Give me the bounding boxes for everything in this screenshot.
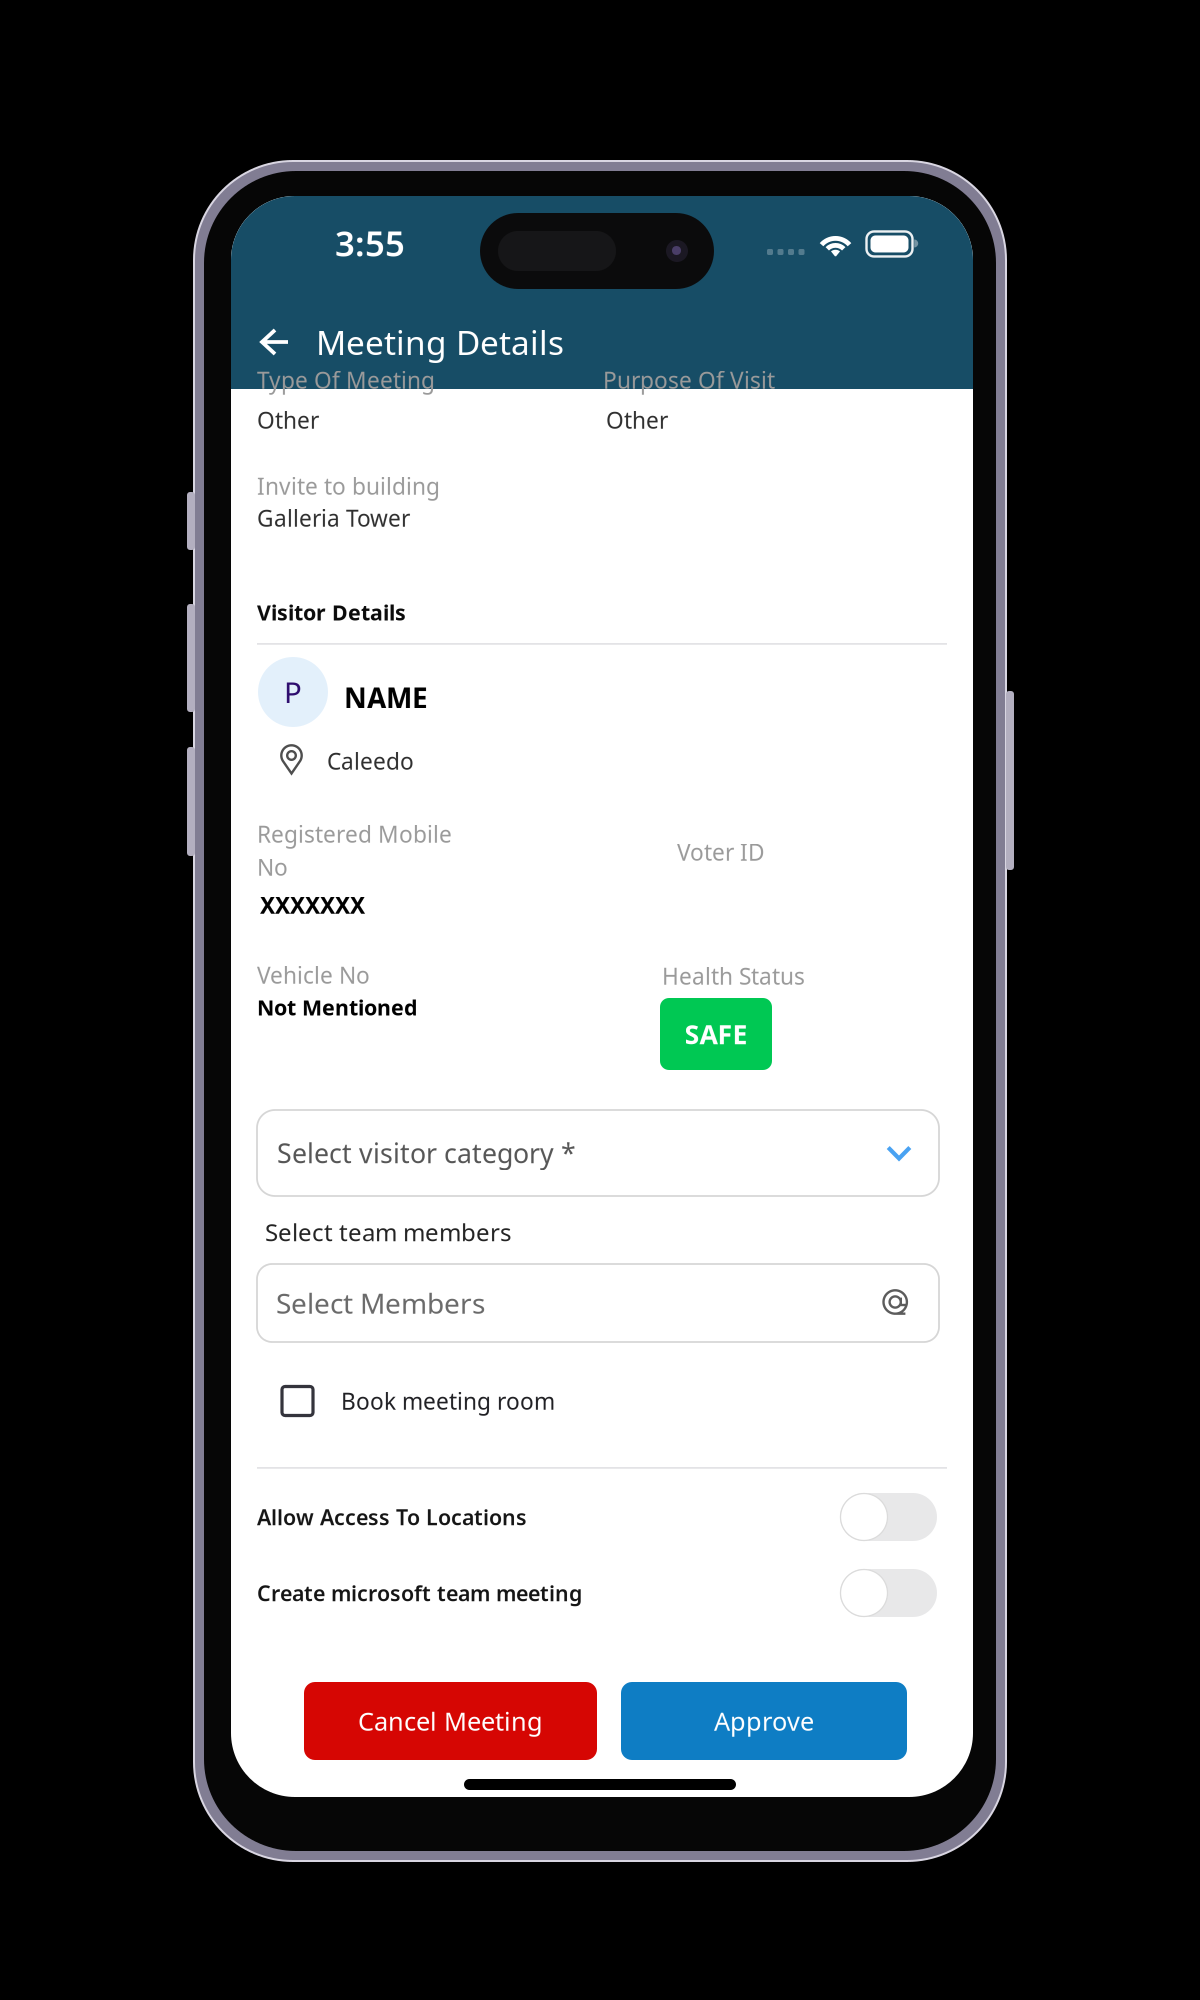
button[interactable]: Back (250, 314, 299, 370)
button[interactable]: Cancel Meeting (304, 1682, 597, 1760)
staticText: Invite to building (257, 471, 440, 501)
staticText: Health Status (662, 961, 805, 991)
staticText: NAME (344, 679, 428, 716)
staticText: Type Of Meeting (257, 365, 435, 395)
staticText: Meeting Details (316, 320, 564, 364)
staticText: Visitor Details (257, 598, 406, 626)
staticText: Not Mentioned (257, 993, 417, 1021)
button[interactable]: Approve (621, 1682, 907, 1760)
button[interactable]: Select Members (257, 1264, 939, 1342)
staticText: Caleedo (327, 746, 414, 776)
staticText: Cancel Meeting (358, 1704, 543, 1738)
staticText: Purpose Of Visit (603, 365, 775, 395)
staticText: Other (257, 405, 319, 435)
staticText: Galleria Tower (257, 503, 410, 533)
button[interactable]: Create microsoft team meeting (231, 1565, 973, 1621)
staticText: Select Members (276, 1284, 485, 1322)
staticText: XXXXXXX (260, 890, 365, 920)
staticText: Select visitor category * (277, 1135, 576, 1171)
staticText: No (257, 852, 288, 882)
staticText: Registered Mobile (257, 819, 452, 849)
staticText: Book meeting room (341, 1386, 555, 1416)
staticText: Vehicle No (257, 960, 370, 990)
staticText: Other (606, 405, 668, 435)
staticText: Allow Access To Locations (257, 1503, 527, 1531)
button[interactable]: Allow Access To Locations (231, 1489, 973, 1545)
staticText: Approve (714, 1704, 814, 1738)
staticText: Voter ID (677, 837, 765, 867)
staticText: 3:55 (335, 220, 405, 266)
staticText: Create microsoft team meeting (257, 1579, 582, 1607)
button[interactable]: Select visitor category * (257, 1110, 939, 1196)
staticText: P (284, 672, 302, 711)
staticText: Select team members (265, 1216, 511, 1248)
staticText: SAFE (684, 1016, 747, 1052)
button[interactable]: Book meeting room (231, 1375, 973, 1427)
